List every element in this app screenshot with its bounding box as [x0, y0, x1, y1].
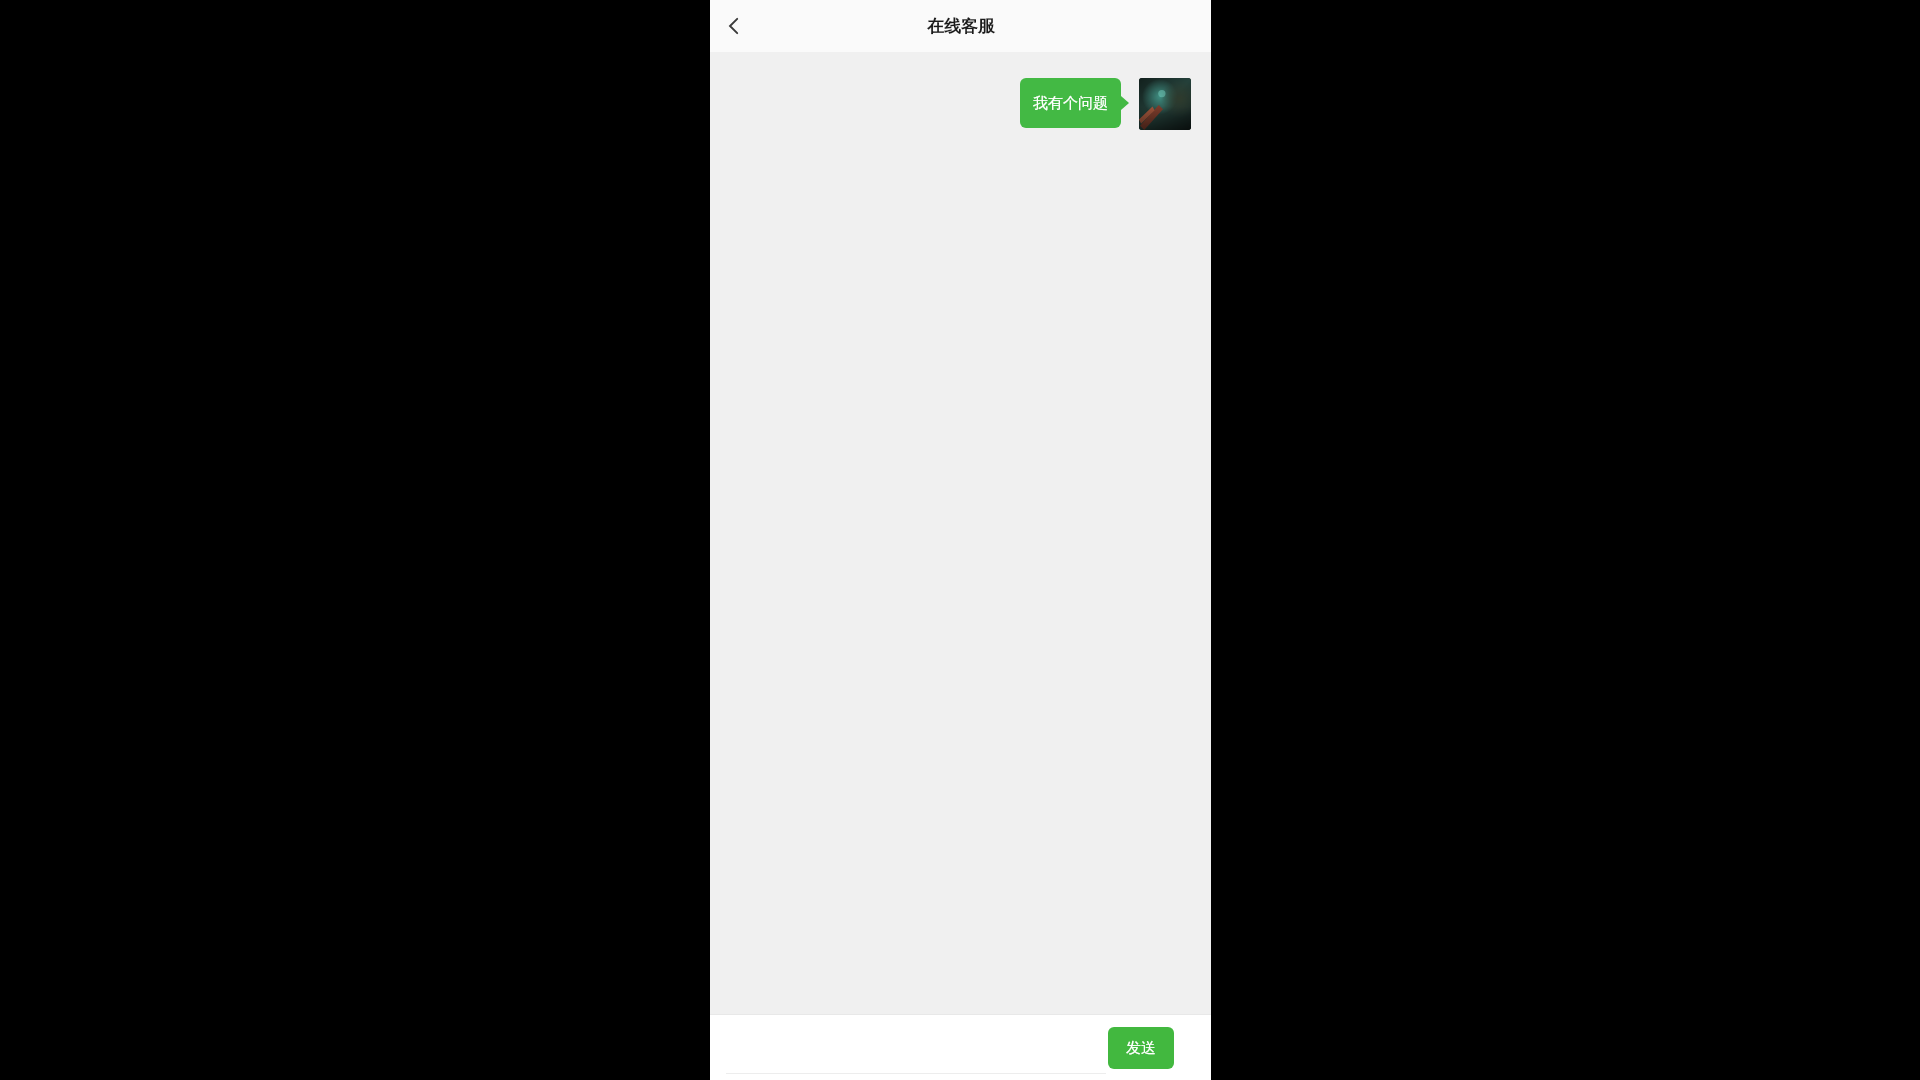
button[interactable]: Avatar [1139, 78, 1191, 130]
staticText: 我有个问题 [1033, 94, 1108, 113]
staticText: 在线客服 [927, 16, 995, 37]
button[interactable]: Back [710, 2, 758, 50]
button[interactable]: 发送 [1108, 1027, 1174, 1069]
button[interactable]: 我有个问题 [1020, 78, 1129, 128]
staticText: 发送 [1126, 1039, 1156, 1058]
